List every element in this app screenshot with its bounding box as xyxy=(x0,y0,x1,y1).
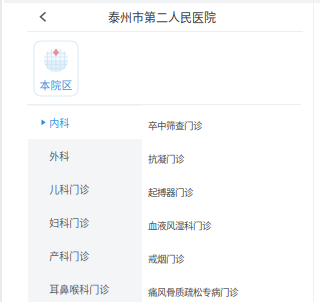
button[interactable]: 痛风骨质疏松专病门诊 xyxy=(142,275,307,305)
button[interactable]: 产科门诊 xyxy=(28,239,142,272)
button[interactable]: 戒烟门诊 xyxy=(142,242,307,275)
button[interactable]: 妇科门诊 xyxy=(28,206,142,239)
button[interactable]: 本院区 xyxy=(34,41,78,96)
staticText: 产科门诊 xyxy=(49,249,89,263)
button[interactable]: 抗凝门诊 xyxy=(142,142,307,175)
button[interactable]: 耳鼻喉科门诊 xyxy=(28,272,142,305)
staticText: 抗凝门诊 xyxy=(148,152,184,165)
staticText: 卒中筛查门诊 xyxy=(148,118,202,132)
button[interactable]: 儿科门诊 xyxy=(28,173,142,206)
button[interactable]: 起搏器门诊 xyxy=(142,175,307,208)
staticText: 耳鼻喉科门诊 xyxy=(49,282,109,296)
staticText: 起搏器门诊 xyxy=(148,185,193,199)
staticText: 泰州市第二人民医院 xyxy=(108,8,216,26)
staticText: 戒烟门诊 xyxy=(148,251,184,265)
button[interactable]: 返回 xyxy=(30,6,56,28)
button[interactable]: 内科 xyxy=(28,106,142,139)
staticText: 本院区 xyxy=(39,77,72,92)
button[interactable]: 外科 xyxy=(28,139,142,173)
staticText: 血液风湿科门诊 xyxy=(148,218,211,232)
staticText: 外科 xyxy=(49,149,69,163)
button[interactable]: 卒中筛查门诊 xyxy=(142,108,307,142)
staticText: 妇科门诊 xyxy=(49,215,89,230)
staticText: 痛风骨质疏松专病门诊 xyxy=(148,285,238,298)
staticText: 儿科门诊 xyxy=(49,182,89,196)
staticText: 内科 xyxy=(49,115,69,130)
button[interactable]: 血液风湿科门诊 xyxy=(142,208,307,242)
